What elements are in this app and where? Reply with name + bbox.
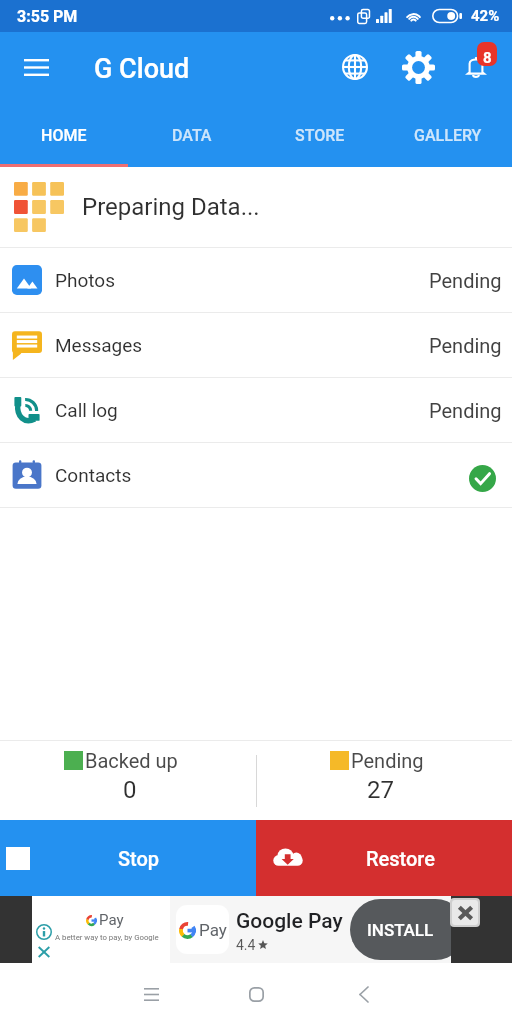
button[interactable]: STORE	[256, 107, 384, 164]
button[interactable]: Photos	[0, 248, 512, 312]
staticText: Google Pay	[236, 909, 343, 934]
button[interactable]: Contacts	[0, 443, 512, 507]
staticText: Pending	[429, 399, 502, 422]
staticText: GALLERY	[414, 126, 482, 145]
button[interactable]: HOME	[0, 107, 128, 164]
button[interactable]: Restore	[256, 820, 512, 896]
button[interactable]: INSTALL	[350, 899, 466, 960]
staticText: STORE	[295, 126, 345, 145]
staticText: HOME	[41, 126, 87, 145]
button[interactable]: Language	[331, 43, 379, 91]
staticText: Restore	[366, 847, 435, 870]
staticText: Pending	[351, 749, 424, 772]
button[interactable]: Preparing Data...	[0, 167, 512, 247]
staticText: Messages	[55, 334, 143, 356]
button[interactable]: Home	[229, 967, 283, 1021]
staticText: Stop	[118, 847, 160, 870]
button[interactable]: Open navigation menu	[12, 43, 60, 91]
staticText: A better way to pay, by Google	[55, 933, 159, 942]
staticText: 8	[483, 49, 492, 66]
staticText: Pending	[429, 269, 502, 292]
button[interactable]: Messages	[0, 313, 512, 377]
staticText: 3:55 PM	[17, 7, 78, 26]
staticText: Backed up	[85, 749, 178, 772]
button[interactable]: DATA	[128, 107, 256, 164]
staticText: Photos	[55, 269, 115, 291]
button[interactable]: GALLERY	[384, 107, 512, 164]
staticText: Pending	[429, 334, 502, 357]
staticText: INSTALL	[367, 920, 434, 940]
staticText: 27	[367, 776, 394, 804]
button[interactable]: Close ad	[450, 898, 480, 927]
staticText: 4.4	[236, 937, 256, 953]
staticText: DATA	[172, 126, 212, 145]
staticText: Pay	[199, 920, 227, 940]
button[interactable]: Back	[337, 967, 391, 1021]
staticText: Contacts	[55, 464, 132, 486]
button[interactable]: Call log	[0, 378, 512, 442]
staticText: 0	[123, 776, 137, 804]
staticText: Preparing Data...	[82, 193, 260, 221]
button[interactable]: Stop	[0, 820, 256, 896]
button[interactable]: Backed up	[0, 741, 256, 820]
staticText: 42%	[471, 7, 500, 25]
button[interactable]: Recent apps	[124, 967, 178, 1021]
staticText: Call log	[55, 399, 118, 421]
staticText: Pay	[99, 911, 124, 929]
button[interactable]: Settings	[394, 43, 442, 91]
button[interactable]: Pending	[256, 741, 512, 820]
staticText: G Cloud	[94, 53, 190, 85]
button[interactable]: Notifications	[452, 46, 500, 94]
